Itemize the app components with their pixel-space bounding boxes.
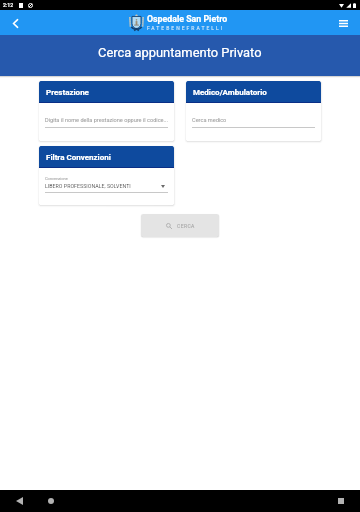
staticText: FATEBENEFRATELLI bbox=[147, 25, 225, 31]
button[interactable]: Back bbox=[9, 491, 29, 511]
button[interactable]: Home bbox=[41, 491, 61, 511]
staticText: Cerca appuntamento Privato bbox=[98, 45, 262, 60]
staticText: 2:12 bbox=[3, 2, 14, 8]
button[interactable]: Back bbox=[3, 11, 27, 35]
staticText: Digita il nome della prestazione oppure … bbox=[45, 117, 168, 124]
button[interactable]: Menu bbox=[331, 11, 355, 35]
staticText: LIBERO PROFESSIONALE, SOLVENTI bbox=[45, 183, 161, 189]
staticText: Convenzione bbox=[45, 176, 68, 181]
button[interactable]: Recents bbox=[331, 491, 351, 511]
staticText: Ospedale San Pietro bbox=[147, 14, 228, 24]
staticText: Prestazione bbox=[46, 88, 89, 97]
staticText: Medico/Ambulatorio bbox=[193, 88, 267, 97]
staticText: CERCA bbox=[177, 223, 195, 229]
staticText: Cerca medico bbox=[192, 117, 227, 124]
button[interactable]: CERCA bbox=[141, 214, 219, 237]
staticText: Filtra Convenzioni bbox=[46, 153, 111, 162]
